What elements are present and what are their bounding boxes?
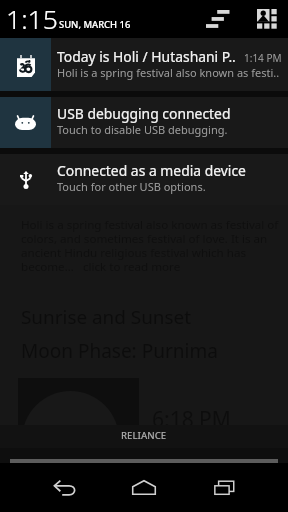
button[interactable]: Today is Holi / Hutashani P.. <box>0 38 288 91</box>
button[interactable]: RELIANCE <box>0 425 288 448</box>
staticText: Today is Holi / Hutashani P.. <box>57 47 244 66</box>
button[interactable]: Connected as a media device <box>0 154 288 205</box>
button[interactable]: Recent apps <box>188 463 260 512</box>
staticText: Touch for other USB options. <box>57 179 206 194</box>
button[interactable]: Home <box>108 463 180 512</box>
staticText: Connected as a media device <box>57 161 282 180</box>
button[interactable]: USB debugging connected <box>0 97 288 148</box>
staticText: Touch to disable USB debugging. <box>57 122 228 137</box>
staticText: USB debugging connected <box>57 104 282 123</box>
staticText: SUN, MARCH 16 <box>59 18 131 31</box>
staticText: 1:14 PM <box>244 51 282 65</box>
button[interactable]: Quick settings <box>247 0 287 38</box>
staticText: Moon Phase: Purnima <box>21 338 218 364</box>
staticText: Holi is a spring festival also known as … <box>57 65 280 80</box>
staticText: Sunrise and Sunset <box>21 304 192 330</box>
staticText: 6:18 PM <box>152 405 231 434</box>
button[interactable]: Back <box>28 463 100 512</box>
button[interactable]: Clear all notifications <box>199 0 237 38</box>
staticText: 1:15 <box>6 1 58 37</box>
staticText: RELIANCE <box>121 429 167 442</box>
